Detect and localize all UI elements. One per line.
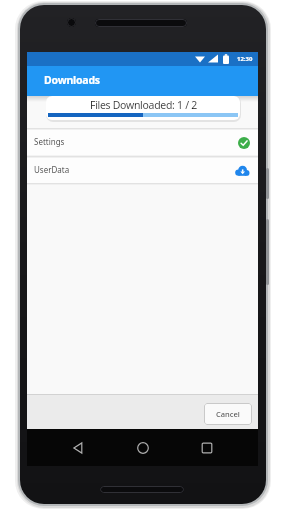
button[interactable] (137, 442, 149, 454)
staticText: Downloads (44, 73, 100, 87)
staticText: Settings (34, 136, 65, 147)
staticText: 12:30 (237, 55, 253, 63)
button[interactable] (72, 442, 84, 454)
button[interactable]: Settings (27, 130, 258, 155)
staticText: Files Downloaded: 1 / 2 (90, 98, 197, 112)
staticText: Cancel (216, 409, 240, 419)
button[interactable]: UserData (27, 158, 258, 183)
button[interactable]: Cancel (204, 403, 252, 425)
button[interactable] (201, 442, 213, 454)
staticText: UserData (34, 164, 70, 175)
button[interactable]: Files Downloaded: 1 / 2 (46, 96, 240, 120)
